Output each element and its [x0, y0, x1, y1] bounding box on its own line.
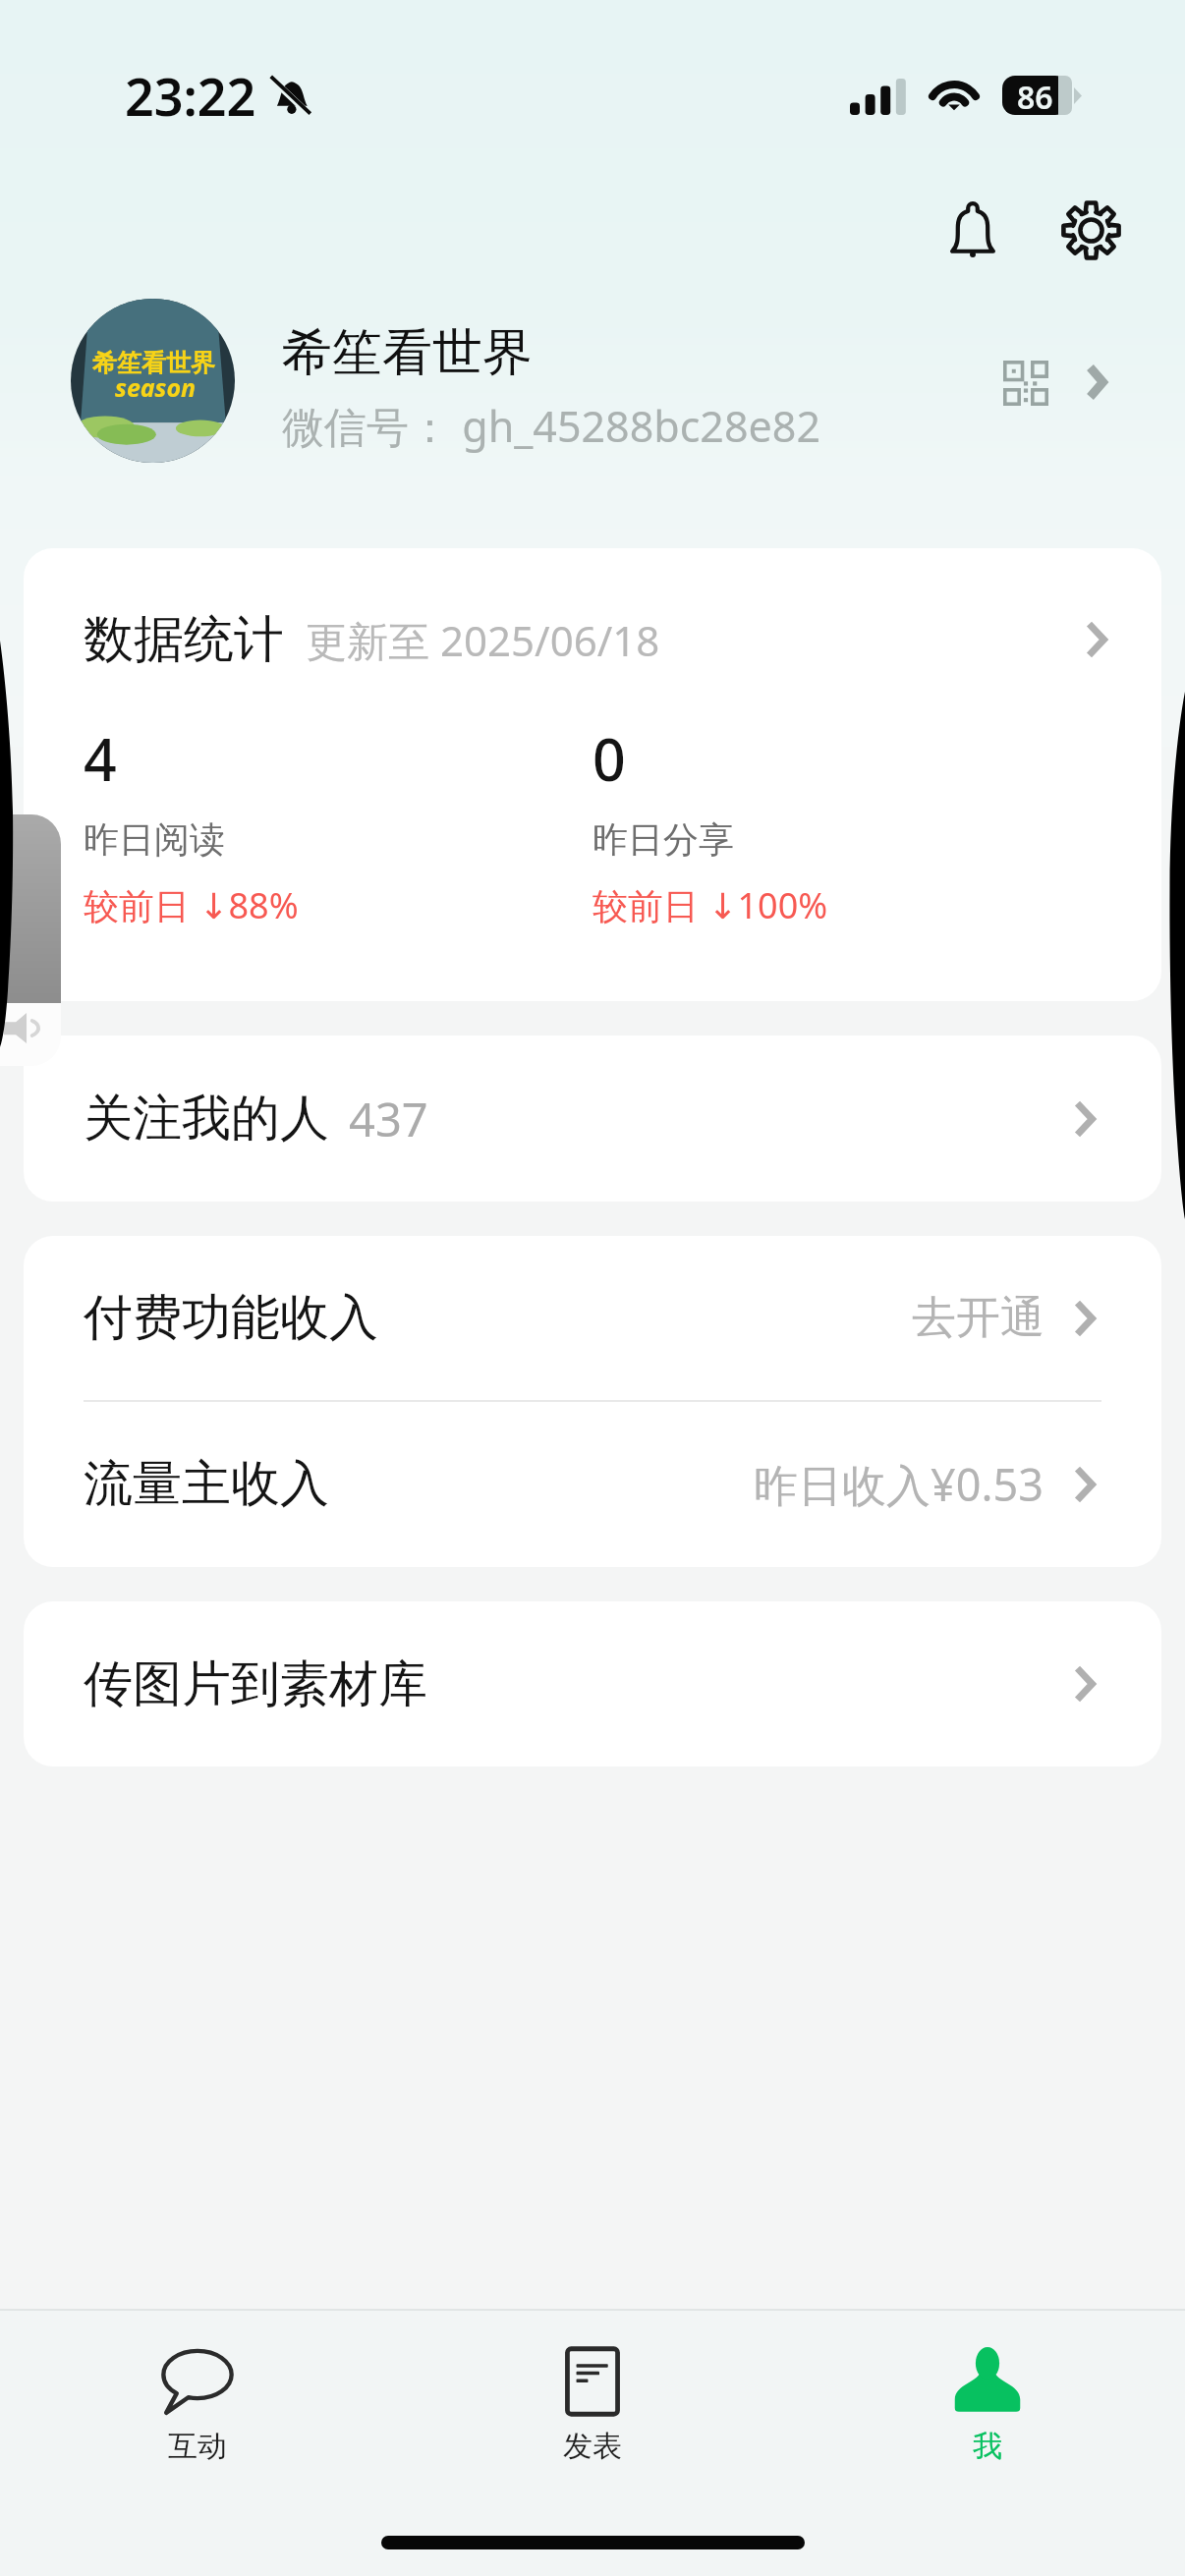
- button[interactable]: 我: [790, 2311, 1185, 2497]
- staticText: 较前日 ↓100%: [592, 881, 828, 929]
- staticText: 437: [349, 1088, 428, 1150]
- staticText: 去开通: [912, 1290, 1044, 1346]
- staticText: 数据统计: [84, 608, 284, 671]
- staticText: season: [115, 370, 197, 404]
- staticText: 86: [1017, 76, 1053, 115]
- button[interactable]: Notifications: [927, 184, 1019, 276]
- button[interactable]: 互动: [0, 2311, 395, 2497]
- staticText: 4: [84, 719, 117, 788]
- staticText: 传图片到素材库: [84, 1653, 427, 1715]
- staticText: 昨日分享: [592, 817, 734, 862]
- staticText: 昨日阅读: [84, 817, 225, 862]
- button[interactable]: 希笙看世界: [0, 291, 1185, 472]
- button[interactable]: 流量主收入: [24, 1402, 1161, 1566]
- staticText: 关注我的人: [84, 1088, 329, 1149]
- staticText: 流量主收入: [84, 1453, 329, 1515]
- staticText: 发表: [563, 2428, 622, 2465]
- button[interactable]: 传图片到素材库: [24, 1601, 1161, 1766]
- staticText: 希笙看世界: [92, 348, 215, 378]
- staticText: 0: [592, 719, 626, 788]
- staticText: 希笙看世界: [282, 321, 533, 384]
- staticText: 我: [973, 2428, 1002, 2465]
- button[interactable]: 数据统计: [24, 548, 1161, 731]
- staticText: 更新至 2025/06/18: [306, 612, 660, 668]
- button[interactable]: 发表: [395, 2311, 790, 2497]
- button[interactable]: QR code: [983, 340, 1069, 426]
- button[interactable]: 关注我的人: [24, 1036, 1161, 1202]
- button[interactable]: Settings: [1044, 184, 1137, 276]
- staticText: 昨日收入¥0.53: [754, 1454, 1044, 1514]
- staticText: 23:22: [125, 61, 256, 131]
- staticText: 互动: [168, 2428, 227, 2465]
- staticText: 较前日 ↓88%: [84, 881, 299, 929]
- staticText: 微信号： gh_45288bc28e82: [282, 397, 820, 455]
- staticText: 付费功能收入: [84, 1287, 378, 1349]
- button[interactable]: 付费功能收入: [24, 1236, 1161, 1400]
